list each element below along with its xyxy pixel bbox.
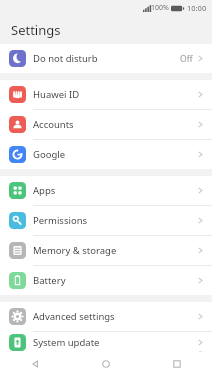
staticText: Permissions xyxy=(33,214,197,227)
staticText: Apps xyxy=(33,184,197,197)
button[interactable]: Huawei ID xyxy=(0,80,212,109)
staticText: Battery xyxy=(33,274,197,287)
button[interactable]: System update xyxy=(0,332,212,352)
staticText: Settings xyxy=(11,21,61,39)
button[interactable]: Battery xyxy=(0,266,212,295)
button[interactable]: Permissions xyxy=(0,206,212,235)
staticText: 10:00 xyxy=(187,3,207,13)
button[interactable]: Accounts xyxy=(0,110,212,139)
button[interactable]: Home xyxy=(70,352,141,376)
staticText: System update xyxy=(33,336,197,349)
staticText: 100% xyxy=(151,3,169,13)
staticText: Memory & storage xyxy=(33,244,197,257)
staticText: Google xyxy=(33,148,197,161)
staticText: Advanced settings xyxy=(33,310,197,323)
staticText: Huawei ID xyxy=(33,88,197,101)
button[interactable]: Apps xyxy=(0,176,212,205)
staticText: Accounts xyxy=(33,118,197,131)
button[interactable]: Google xyxy=(0,140,212,169)
button[interactable]: Advanced settings xyxy=(0,302,212,331)
staticText: Do not disturb xyxy=(33,52,180,65)
button[interactable]: Back xyxy=(0,352,70,376)
staticText: Off xyxy=(180,53,193,65)
button[interactable]: Memory & storage xyxy=(0,236,212,265)
button[interactable]: Do not disturb xyxy=(0,44,212,73)
button[interactable]: Recent apps xyxy=(141,352,212,376)
